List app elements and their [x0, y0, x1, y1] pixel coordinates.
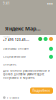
staticText: Для точного расчёта стоимости и сроков д…: [3, 69, 50, 79]
staticText: Социальные сети: [3, 55, 26, 58]
staticText: Записаться онлайн: [3, 47, 29, 50]
staticText: +7 495 123-45-67: [3, 38, 30, 42]
staticText: ▪▪▪: [47, 2, 53, 5]
staticText: Подробнее: [32, 89, 50, 92]
staticText: 9:41: [3, 2, 10, 5]
staticText: 3 отзыва: [7, 96, 19, 99]
staticText: Телефон: [3, 36, 10, 38]
staticText: Описание: [3, 63, 16, 66]
staticText: Яндекс Маркет: [5, 25, 43, 32]
